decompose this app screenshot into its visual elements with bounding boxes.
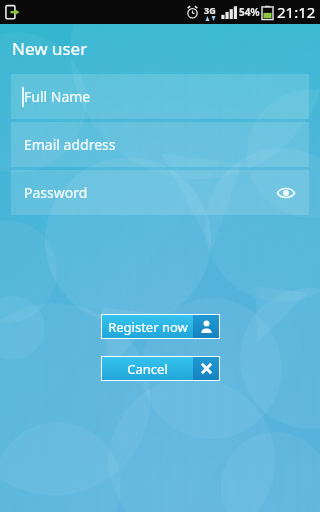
button[interactable]: Register now (102, 315, 219, 338)
staticText: Full Name (24, 87, 91, 106)
staticText: New user (12, 37, 88, 60)
staticText: Register now (108, 318, 188, 336)
staticText: Email address (24, 135, 116, 154)
staticText: 54% (239, 5, 260, 19)
button[interactable]: Full Name (11, 74, 309, 119)
button[interactable]: Show password (273, 180, 299, 206)
button[interactable]: Email address (11, 122, 309, 167)
staticText: Cancel (127, 360, 168, 378)
staticText: 21:12 (277, 2, 316, 22)
button[interactable]: Cancel (102, 357, 219, 380)
button[interactable]: Password (11, 170, 309, 215)
staticText: Password (24, 183, 88, 202)
staticText: 3G (204, 4, 216, 16)
